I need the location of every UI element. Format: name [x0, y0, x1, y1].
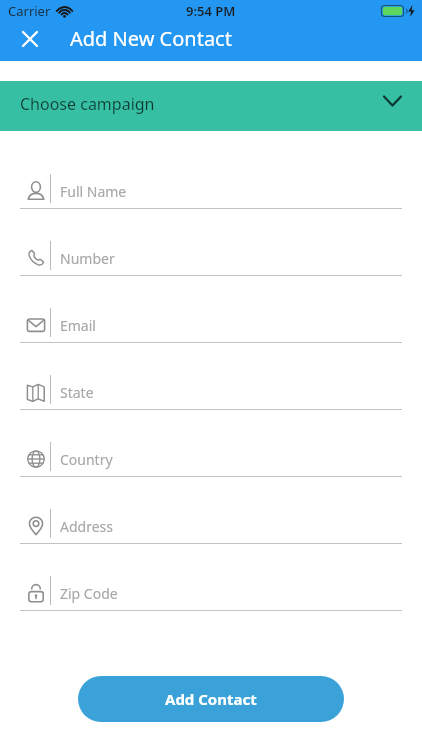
staticText: Zip Code — [60, 584, 118, 603]
staticText: 9:54 PM — [186, 2, 236, 20]
staticText: Address — [60, 517, 113, 536]
button[interactable]: Choose campaign — [0, 81, 422, 131]
button[interactable]: State — [0, 343, 422, 410]
staticText: Number — [60, 249, 115, 268]
button[interactable]: Country — [0, 410, 422, 477]
staticText: Add New Contact — [70, 25, 232, 52]
button[interactable]: Full Name — [0, 142, 422, 209]
staticText: Email — [60, 316, 96, 335]
staticText: Country — [60, 450, 113, 469]
staticText: Choose campaign — [20, 93, 155, 115]
staticText: State — [60, 383, 94, 402]
button[interactable] — [13, 22, 46, 55]
staticText: Add Contact — [165, 689, 257, 709]
button[interactable]: Address — [0, 477, 422, 544]
staticText: Full Name — [60, 182, 127, 201]
button[interactable]: Email — [0, 276, 422, 343]
button[interactable]: Add Contact — [78, 676, 344, 722]
button[interactable]: Zip Code — [0, 544, 422, 611]
button[interactable]: Number — [0, 209, 422, 276]
staticText: Carrier — [8, 2, 51, 20]
